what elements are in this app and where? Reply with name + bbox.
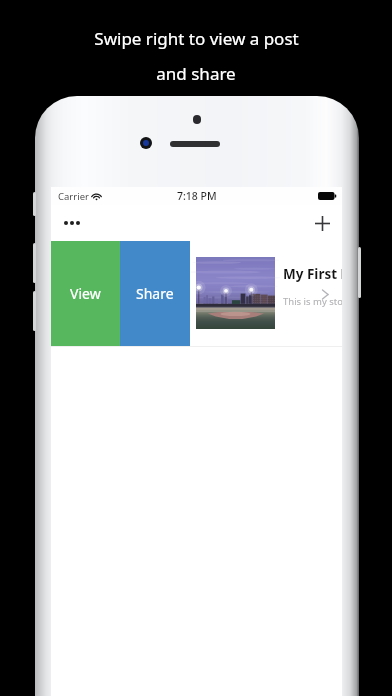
button[interactable]: Add post <box>309 210 336 237</box>
staticText: My First Post <box>283 265 342 283</box>
staticText: Carrier <box>58 190 89 203</box>
button[interactable]: More options <box>56 212 88 234</box>
staticText: This is my story <box>283 295 342 308</box>
staticText: Swipe right to view a post <box>94 27 299 50</box>
button[interactable]: My First Post <box>190 241 342 346</box>
staticText: 7:18 PM <box>177 189 217 203</box>
staticText: and share <box>156 62 236 85</box>
button[interactable]: Share <box>120 241 190 346</box>
button[interactable]: View <box>51 241 120 346</box>
staticText: View <box>70 284 101 303</box>
staticText: Share <box>136 284 174 303</box>
